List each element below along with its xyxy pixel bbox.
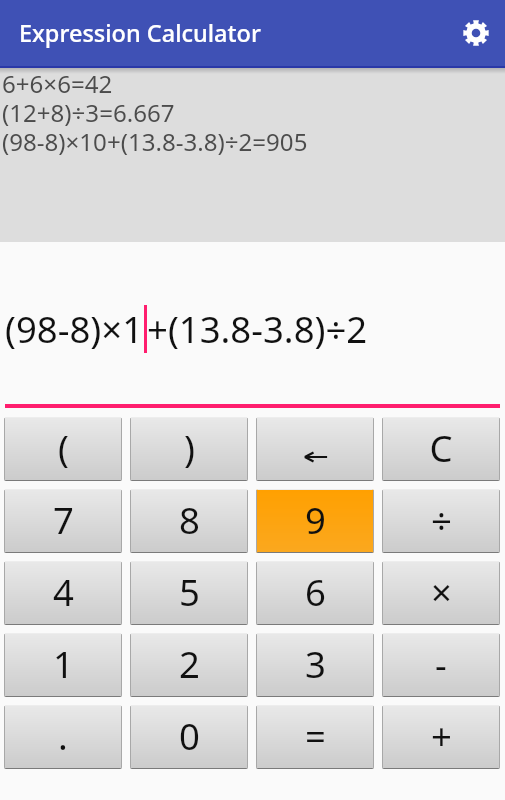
button[interactable]: 4 (4, 561, 122, 625)
staticText: 8 (179, 495, 200, 545)
button[interactable]: ) (130, 417, 248, 481)
staticText: Expression Calculator (19, 17, 261, 49)
staticText: = (305, 711, 326, 761)
staticText: ( (58, 423, 69, 473)
button[interactable]: 1 (4, 633, 122, 697)
button[interactable]: 7 (4, 489, 122, 553)
staticText: 6+6×6=42 (12+8)÷3=6.667 (98-8)×10+(13.8-… (2, 67, 308, 158)
button[interactable]: 2 (130, 633, 248, 697)
staticText: 0 (179, 711, 200, 761)
button[interactable]: Backspace (256, 417, 374, 481)
staticText: ) (184, 423, 195, 473)
staticText: 4 (53, 567, 74, 617)
button[interactable]: C (382, 417, 500, 481)
staticText: (98-8)×1 (5, 304, 144, 354)
staticText: 9 (305, 495, 326, 545)
staticText: - (435, 639, 447, 689)
button[interactable]: 6 (256, 561, 374, 625)
button[interactable]: ÷ (382, 489, 500, 553)
button[interactable]: + (382, 705, 500, 769)
staticText: C (429, 423, 453, 473)
button[interactable]: . (4, 705, 122, 769)
button[interactable]: = (256, 705, 374, 769)
button[interactable]: ( (4, 417, 122, 481)
staticText: 5 (179, 567, 200, 617)
button[interactable]: - (382, 633, 500, 697)
button[interactable]: 8 (130, 489, 248, 553)
staticText: +(13.8-3.8)÷2 (147, 304, 368, 354)
staticText: 6 (305, 567, 326, 617)
button[interactable]: 5 (130, 561, 248, 625)
button[interactable]: × (382, 561, 500, 625)
staticText: 3 (305, 639, 326, 689)
staticText: . (58, 711, 68, 761)
button[interactable]: Settings (453, 10, 499, 56)
staticText: 1 (53, 639, 74, 689)
staticText: ÷ (431, 495, 452, 545)
button[interactable]: 0 (130, 705, 248, 769)
button[interactable]: 9 (256, 489, 374, 553)
staticText: × (431, 567, 452, 617)
staticText: 7 (53, 495, 74, 545)
button[interactable]: 6+6×6=42 (12+8)÷3=6.667 (98-8)×10+(13.8-… (0, 68, 505, 242)
button[interactable]: 3 (256, 633, 374, 697)
staticText: + (431, 711, 452, 761)
staticText: 2 (179, 639, 200, 689)
